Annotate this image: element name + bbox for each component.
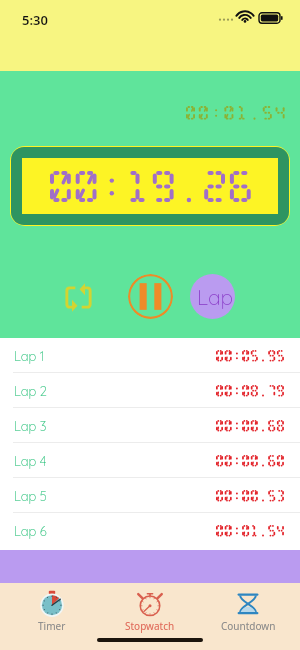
staticText: Lap 1 (14, 348, 45, 364)
staticText: 5:30 (22, 11, 48, 29)
button[interactable]: Stopwatch (104, 589, 196, 633)
button[interactable]: Lap 1 (0, 338, 300, 373)
button[interactable]: Lap (190, 274, 235, 319)
staticText: Lap 2 (14, 383, 48, 399)
button[interactable]: Lap 4 (0, 443, 300, 478)
staticText: Countdown (221, 619, 276, 633)
staticText: Lap 6 (14, 523, 47, 539)
button[interactable]: Reset (56, 275, 100, 319)
staticText: Lap 5 (14, 488, 47, 504)
staticText: Lap (197, 284, 234, 310)
button[interactable]: Timer (6, 589, 98, 633)
button[interactable]: Lap 5 (0, 478, 300, 513)
staticText: Lap 3 (14, 418, 47, 434)
staticText: Lap 4 (14, 453, 47, 469)
staticText: Timer (38, 619, 66, 633)
button[interactable]: Pause (128, 274, 173, 319)
button[interactable]: Lap 6 (0, 513, 300, 548)
staticText: Stopwatch (125, 619, 175, 633)
button[interactable]: Lap 2 (0, 373, 300, 408)
button[interactable]: Countdown (202, 589, 294, 633)
button[interactable]: Lap 3 (0, 408, 300, 443)
